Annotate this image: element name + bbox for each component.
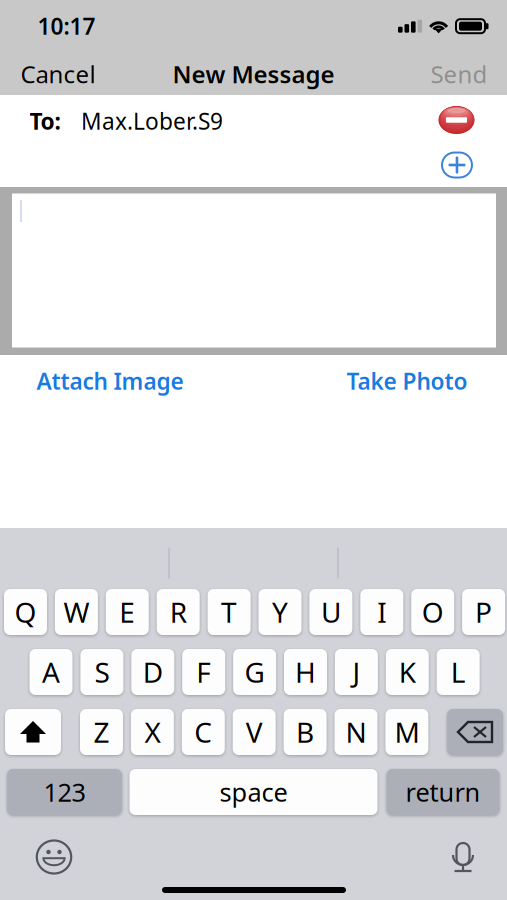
staticText: Cancel bbox=[20, 58, 95, 90]
button[interactable]: E bbox=[106, 589, 149, 635]
button[interactable]: Delete bbox=[447, 709, 503, 755]
staticText: T bbox=[221, 593, 237, 631]
button[interactable]: G bbox=[233, 649, 276, 695]
staticText: Send bbox=[430, 58, 487, 90]
button[interactable]: space bbox=[129, 769, 377, 815]
staticText: P bbox=[475, 593, 492, 631]
staticText: Take Photo bbox=[346, 366, 467, 396]
button[interactable]: Emoji bbox=[32, 835, 76, 879]
button[interactable]: T bbox=[208, 589, 251, 635]
staticText: 123 bbox=[43, 775, 85, 809]
button[interactable]: N bbox=[334, 709, 377, 755]
staticText: R bbox=[170, 593, 187, 631]
button[interactable]: O bbox=[411, 589, 454, 635]
staticText: J bbox=[352, 653, 360, 691]
staticText: Max.Lober.S9 bbox=[81, 106, 223, 136]
staticText: Y bbox=[272, 593, 288, 631]
button[interactable]: 123 bbox=[7, 769, 122, 815]
button[interactable]: W bbox=[55, 589, 98, 635]
button[interactable]: D bbox=[131, 649, 174, 695]
staticText: I bbox=[377, 593, 386, 631]
staticText: D bbox=[143, 653, 163, 691]
button[interactable]: P bbox=[462, 589, 505, 635]
button[interactable]: V bbox=[233, 709, 276, 755]
staticText: C bbox=[194, 713, 212, 751]
staticText: K bbox=[399, 653, 416, 691]
button[interactable]: Shift bbox=[5, 709, 61, 755]
button[interactable]: K bbox=[386, 649, 429, 695]
button[interactable]: S bbox=[80, 649, 123, 695]
staticText: return bbox=[405, 775, 480, 809]
staticText: O bbox=[422, 593, 444, 631]
button[interactable]: M bbox=[385, 709, 428, 755]
staticText: 10:17 bbox=[37, 11, 95, 41]
button[interactable]: Take Photo bbox=[346, 363, 467, 399]
button[interactable]: Send bbox=[424, 53, 494, 95]
button[interactable]: Remove recipient bbox=[434, 101, 478, 139]
button[interactable]: R bbox=[157, 589, 200, 635]
staticText: Q bbox=[14, 593, 36, 631]
staticText: G bbox=[245, 653, 265, 691]
staticText: E bbox=[119, 593, 135, 631]
button[interactable]: B bbox=[284, 709, 327, 755]
button[interactable]: Add recipient bbox=[437, 147, 477, 183]
staticText: F bbox=[196, 653, 211, 691]
button[interactable]: Z bbox=[80, 709, 123, 755]
staticText: V bbox=[246, 713, 263, 751]
staticText: U bbox=[321, 593, 341, 631]
button[interactable]: Cancel bbox=[13, 53, 103, 95]
button[interactable]: X bbox=[131, 709, 174, 755]
staticText: L bbox=[451, 653, 466, 691]
staticText: H bbox=[295, 653, 316, 691]
button[interactable]: U bbox=[309, 589, 352, 635]
staticText: B bbox=[296, 713, 314, 751]
staticText: Z bbox=[93, 713, 109, 751]
button[interactable]: A bbox=[29, 649, 72, 695]
staticText: Attach Image bbox=[36, 366, 183, 396]
staticText: X bbox=[144, 713, 160, 751]
staticText: New Message bbox=[172, 58, 334, 90]
staticText: space bbox=[219, 775, 287, 809]
button[interactable]: H bbox=[284, 649, 327, 695]
staticText: M bbox=[394, 713, 419, 751]
staticText: S bbox=[94, 653, 109, 691]
button[interactable]: Y bbox=[258, 589, 301, 635]
staticText: A bbox=[42, 653, 60, 691]
button[interactable]: Q bbox=[4, 589, 47, 635]
staticText: N bbox=[345, 713, 366, 751]
button[interactable]: C bbox=[182, 709, 225, 755]
button[interactable]: return bbox=[386, 769, 499, 815]
button[interactable]: Dictate bbox=[443, 839, 483, 879]
button[interactable]: J bbox=[335, 649, 378, 695]
button[interactable]: L bbox=[437, 649, 480, 695]
button[interactable]: Attach Image bbox=[36, 363, 183, 399]
staticText: W bbox=[63, 593, 89, 631]
button[interactable]: F bbox=[182, 649, 225, 695]
button[interactable]: I bbox=[360, 589, 403, 635]
staticText: To: bbox=[29, 106, 60, 136]
